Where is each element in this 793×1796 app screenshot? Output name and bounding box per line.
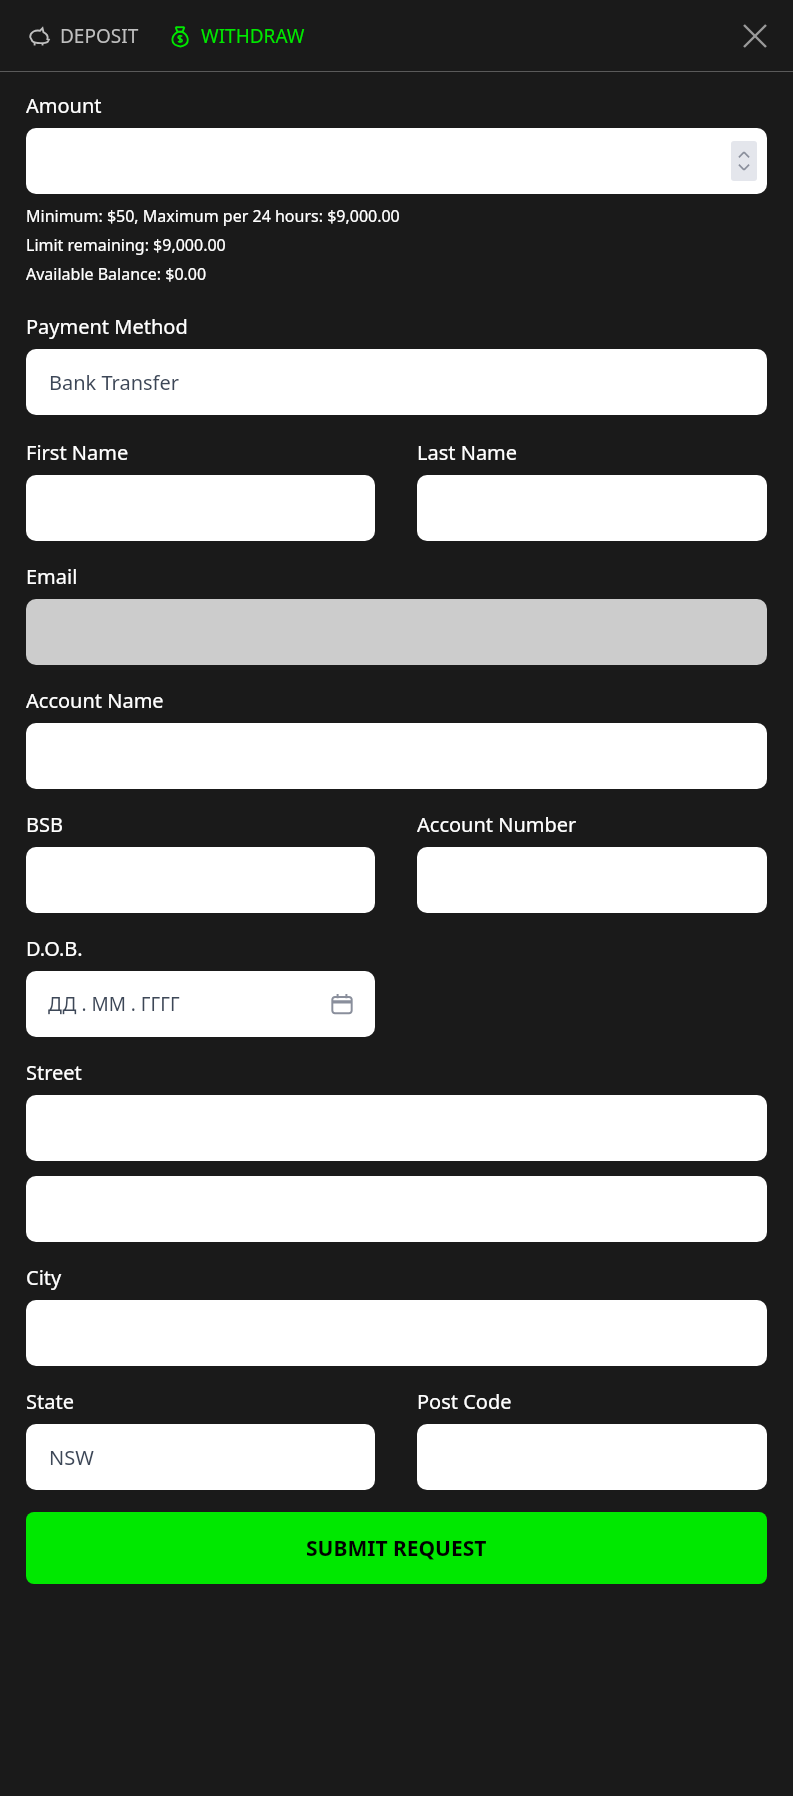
staticText: DEPOSIT [60, 23, 139, 49]
button[interactable]: Text field [417, 475, 767, 541]
button[interactable]: Close [731, 12, 779, 60]
button[interactable]: Text field [26, 1176, 767, 1242]
button[interactable]: ДД . ММ . ГГГГ [26, 971, 375, 1037]
staticText: Limit remaining: $9,000.00 [26, 234, 226, 256]
staticText: First Name [26, 439, 129, 466]
staticText: Last Name [417, 439, 518, 466]
staticText: BSB [26, 811, 63, 838]
staticText: Account Number [417, 811, 577, 838]
button[interactable]: NSW [26, 1424, 375, 1490]
staticText: Minimum: $50, Maximum per 24 hours: $9,0… [26, 205, 400, 227]
staticText: Available Balance: $0.00 [26, 263, 207, 285]
button[interactable]: Increment or decrement amount [26, 128, 767, 194]
staticText: Payment Method [26, 313, 188, 340]
staticText: State [26, 1388, 74, 1415]
button[interactable]: WITHDRAW [167, 17, 307, 55]
staticText: WITHDRAW [201, 23, 305, 49]
button[interactable]: Text field [26, 475, 375, 541]
button[interactable]: Increment or decrement amount [731, 141, 757, 181]
button[interactable]: Bank Transfer [26, 349, 767, 415]
staticText: Amount [26, 92, 102, 119]
staticText: SUBMIT REQUEST [306, 1534, 487, 1563]
other: Pick date [329, 991, 355, 1017]
staticText: ДД . ММ . ГГГГ [48, 991, 180, 1017]
button[interactable]: SUBMIT REQUEST [26, 1512, 767, 1584]
button[interactable]: Text field [26, 723, 767, 789]
button[interactable]: DEPOSIT [26, 17, 141, 55]
staticText: D.O.B. [26, 935, 83, 962]
button[interactable]: Text field [417, 1424, 767, 1490]
button[interactable]: Text field [26, 847, 375, 913]
staticText: City [26, 1264, 62, 1291]
staticText: Post Code [417, 1388, 512, 1415]
staticText: Street [26, 1059, 82, 1086]
button[interactable]: Text field [417, 847, 767, 913]
staticText: Bank Transfer [49, 369, 180, 396]
staticText: Account Name [26, 687, 164, 714]
staticText: NSW [49, 1444, 94, 1471]
button[interactable]: Text field [26, 1095, 767, 1161]
button[interactable]: Text field [26, 1300, 767, 1366]
staticText: Email [26, 563, 78, 590]
